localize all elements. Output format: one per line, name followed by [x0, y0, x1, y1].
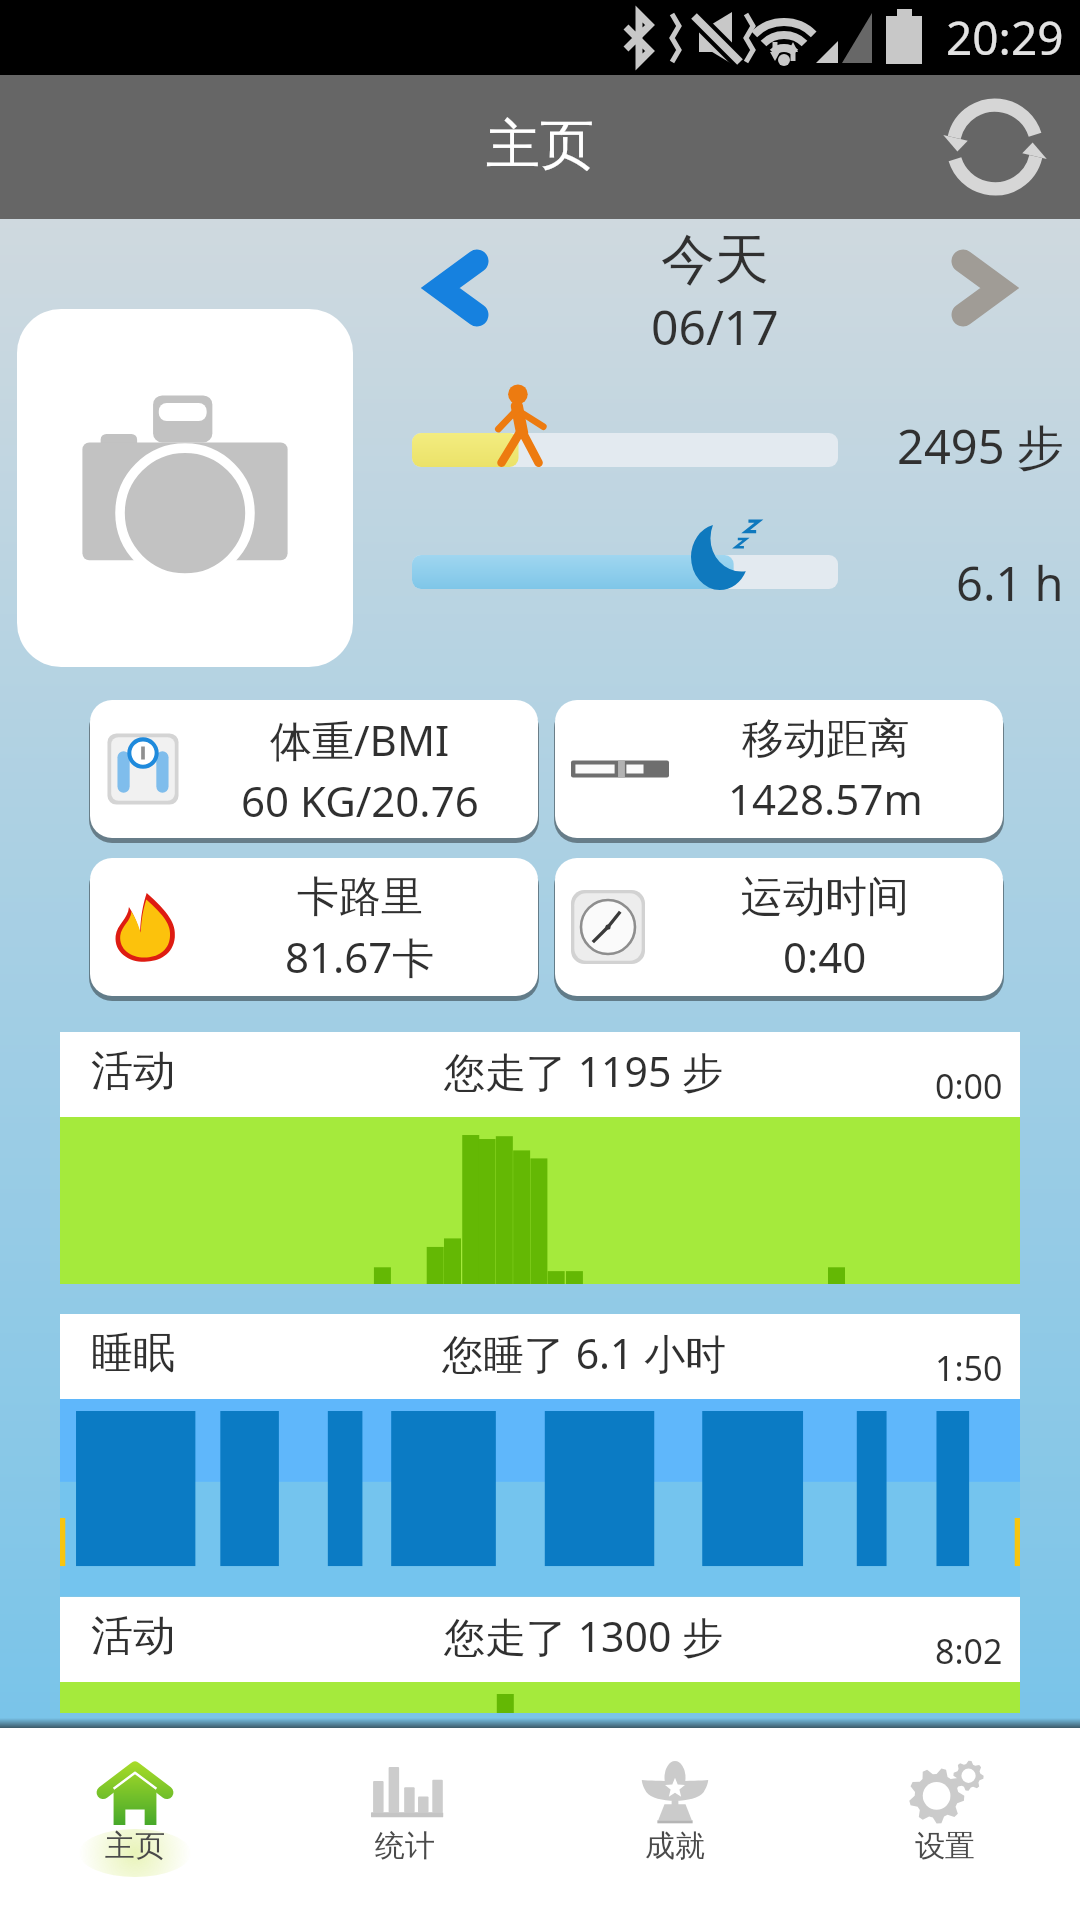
staticText: 您睡了 6.1 小时 [442, 1325, 727, 1381]
button[interactable]: 体重/BMI [90, 700, 538, 838]
staticText: 60 KG/20.76 [241, 772, 479, 829]
button[interactable]: 卡路里 [90, 858, 538, 996]
staticText: 81.67卡 [285, 928, 435, 985]
staticText: 0:40 [783, 928, 867, 985]
button[interactable]: 设置 [810, 1728, 1080, 1920]
button[interactable]: 活动 [60, 1032, 1020, 1284]
staticText: 20:29 [946, 6, 1064, 69]
staticText: 0:00 [935, 1063, 1003, 1109]
staticText: 移动距离 [742, 713, 910, 766]
staticText: 主页 [486, 111, 594, 179]
button[interactable]: Previous day [404, 232, 509, 344]
staticText: 运动时间 [741, 871, 909, 924]
button[interactable]: 睡眠 [60, 1314, 1020, 1596]
button[interactable]: 活动 [60, 1597, 1020, 1813]
staticText: 1:50 [935, 1345, 1003, 1391]
staticText: 设置 [915, 1827, 975, 1865]
staticText: 您走了 1300 步 [444, 1608, 724, 1664]
staticText: 8:02 [935, 1628, 1003, 1674]
staticText: 1428.57m [728, 770, 923, 827]
button[interactable]: Refresh [935, 92, 1055, 202]
button[interactable]: Next day [931, 232, 1036, 344]
staticText: 活动 [91, 1610, 175, 1663]
button[interactable]: 成就 [540, 1728, 810, 1920]
button[interactable]: 移动距离 [555, 700, 1003, 838]
button[interactable]: 统计 [270, 1728, 540, 1920]
staticText: 06/17 [651, 294, 779, 359]
staticText: 成就 [645, 1827, 705, 1865]
staticText: 卡路里 [297, 871, 423, 924]
staticText: 2495 步 [897, 414, 1064, 478]
staticText: 睡眠 [91, 1327, 175, 1380]
button[interactable]: 今天 [555, 226, 875, 359]
staticText: 活动 [91, 1045, 175, 1098]
button[interactable]: Profile photo [17, 309, 353, 667]
staticText: 今天 [661, 226, 769, 294]
staticText: 主页 [105, 1827, 165, 1865]
button[interactable]: 主页 [0, 1728, 270, 1920]
staticText: 6.1 h [956, 551, 1064, 615]
button[interactable]: 运动时间 [555, 858, 1003, 996]
staticText: 体重/BMI [270, 711, 450, 768]
staticText: 统计 [375, 1827, 435, 1865]
staticText: 您走了 1195 步 [444, 1043, 724, 1099]
